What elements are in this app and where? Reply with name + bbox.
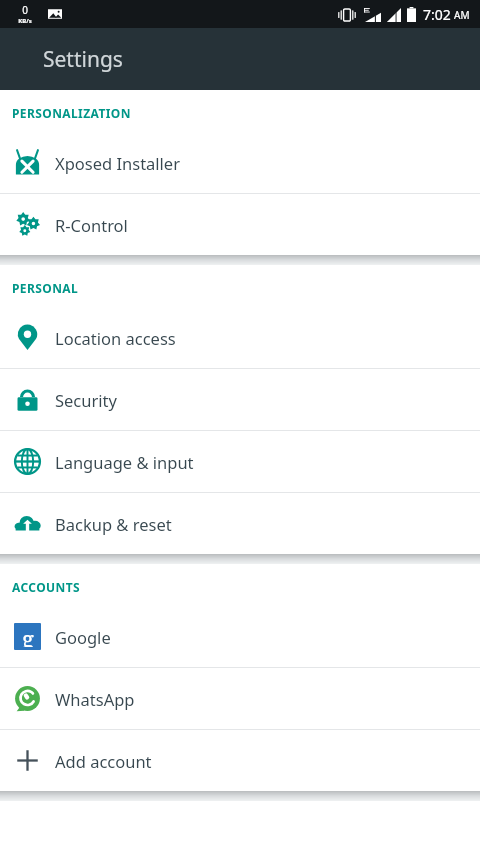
staticText: Security <box>55 389 117 411</box>
button[interactable]: WhatsApp <box>0 668 480 729</box>
staticText: Location access <box>55 327 176 349</box>
staticText: ACCOUNTS <box>12 579 81 595</box>
button[interactable]: g <box>0 606 480 667</box>
staticText: PERSONAL <box>12 280 79 296</box>
button[interactable]: Language & input <box>0 431 480 492</box>
staticText: g <box>22 623 34 647</box>
staticText: PERSONALIZATION <box>12 105 131 121</box>
staticText: Add account <box>55 750 152 772</box>
staticText: AM <box>454 8 470 22</box>
staticText: Backup & reset <box>55 513 172 535</box>
staticText: R-Control <box>55 214 128 236</box>
staticText: WhatsApp <box>55 688 135 710</box>
staticText: Google <box>55 626 111 648</box>
staticText: Settings <box>43 45 123 74</box>
button[interactable]: Location access <box>0 307 480 368</box>
staticText: 0 <box>22 3 28 17</box>
staticText: KB/s <box>18 17 32 25</box>
button[interactable]: Add account <box>0 730 480 791</box>
staticText: Language & input <box>55 451 194 473</box>
button[interactable]: Security <box>0 369 480 430</box>
staticText: 7:02 <box>423 5 451 24</box>
button[interactable]: Backup & reset <box>0 493 480 554</box>
button[interactable]: R-Control <box>0 194 480 255</box>
button[interactable]: Xposed Installer <box>0 132 480 193</box>
staticText: Xposed Installer <box>55 152 180 174</box>
